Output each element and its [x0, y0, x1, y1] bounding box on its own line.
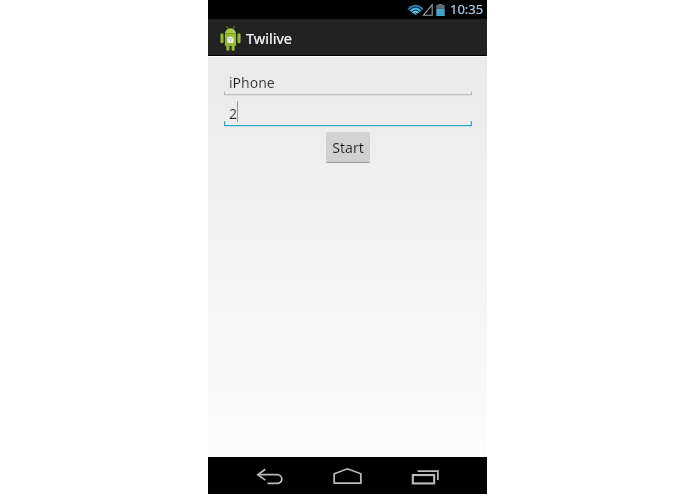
staticText: iPhone [229, 73, 275, 92]
staticText: 2 [229, 104, 238, 123]
staticText: Twilive [246, 28, 292, 48]
button[interactable]: Home [333, 468, 362, 484]
button[interactable]: Back [257, 469, 283, 484]
staticText: 10:35 [450, 0, 484, 18]
button[interactable]: Recent apps [412, 470, 439, 484]
button[interactable]: Start [326, 132, 370, 163]
button[interactable]: iPhone [224, 69, 472, 96]
button[interactable]: 2 [224, 100, 472, 127]
staticText: Start [332, 138, 364, 157]
